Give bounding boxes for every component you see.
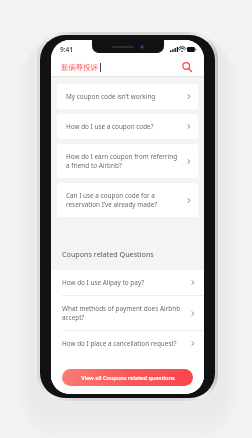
staticText: View all Coupons related questions	[81, 374, 175, 382]
staticText: 新病尊投诉	[61, 63, 98, 72]
staticText: How do I earn coupon from referring a fr…	[66, 152, 181, 170]
button[interactable]: View all Coupons related questions	[62, 369, 193, 386]
button[interactable]: My coupon code isn’t working	[57, 84, 198, 109]
button[interactable]: What methods of payment does Airbnb acce…	[51, 296, 204, 330]
button[interactable]: How do I use a coupon code?	[57, 114, 198, 139]
button[interactable]: Search	[180, 60, 194, 74]
staticText: Can I use a coupon code for a reservatio…	[66, 191, 181, 209]
staticText: How do I use a coupon code?	[66, 122, 181, 131]
staticText: How do I place a cancellation request?	[62, 339, 185, 348]
staticText: What methods of payment does Airbnb acce…	[62, 304, 185, 322]
staticText: 9:41	[60, 45, 74, 54]
staticText: Coupons related Questions	[62, 249, 154, 259]
button[interactable]: Can I use a coupon code for a reservatio…	[57, 183, 198, 217]
button[interactable]: How do I place a cancellation request?	[51, 331, 204, 356]
staticText: My coupon code isn’t working	[66, 92, 181, 101]
staticText: How do I use Alipay to pay?	[62, 278, 185, 287]
button[interactable]: How do I use Alipay to pay?	[51, 270, 204, 295]
button[interactable]: How do I earn coupon from referring a fr…	[57, 144, 198, 178]
